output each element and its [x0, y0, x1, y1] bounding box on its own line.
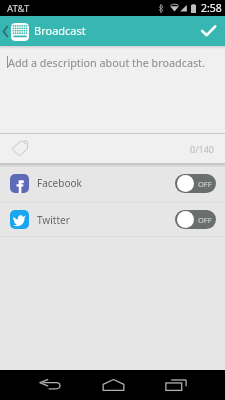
- button[interactable]: Done: [191, 16, 225, 46]
- button[interactable]: Recents: [159, 370, 193, 400]
- staticText: Twitter: [37, 213, 70, 227]
- staticText: Broadcast: [34, 23, 86, 38]
- staticText: 2:58: [201, 1, 222, 15]
- button[interactable]: Back: [33, 370, 67, 400]
- button[interactable]: Home: [96, 370, 130, 400]
- button[interactable]: Off: [175, 210, 216, 229]
- button[interactable]: Twitter: [0, 203, 225, 236]
- staticText: 0/140: [190, 143, 214, 155]
- staticText: Add a description about the broadcast.: [8, 55, 205, 70]
- button[interactable]: Facebook: [0, 164, 225, 202]
- staticText: Facebook: [37, 176, 82, 190]
- staticText: AT&T: [7, 2, 30, 15]
- button[interactable]: Navigate up: [0, 16, 11, 46]
- staticText: OFF: [198, 215, 212, 225]
- button[interactable]: Off: [175, 174, 216, 193]
- staticText: OFF: [198, 179, 212, 189]
